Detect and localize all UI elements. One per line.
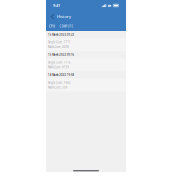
- button[interactable]: Single-Core: 1716: [46, 58, 126, 71]
- staticText: Single-Core: 1711: [48, 41, 71, 44]
- staticText: COMPUTE: [59, 25, 72, 28]
- staticText: Single-Core: 1716: [48, 61, 71, 64]
- staticText: 15 March 2022 09:16: [48, 53, 75, 56]
- staticText: Single-Core: 1682: [48, 81, 71, 84]
- staticText: Multi-Core: 4208: [48, 45, 69, 49]
- staticText: 14 March 2022 19:58: [48, 73, 75, 77]
- button[interactable]: COMPUTE: [57, 22, 74, 31]
- staticText: Multi-Core: 3941: [48, 86, 69, 89]
- staticText: CPU: [49, 25, 55, 28]
- button[interactable]: Back: [48, 11, 57, 21]
- button[interactable]: Single-Core: 1711: [46, 38, 126, 51]
- staticText: Multi-Core: 4139: [48, 65, 69, 69]
- staticText: 9:41: [53, 3, 60, 8]
- button[interactable]: CPU: [46, 22, 57, 31]
- staticText: History: [57, 14, 71, 19]
- button[interactable]: Single-Core: 1682: [46, 79, 126, 92]
- staticText: 15 March 2022 09:23: [48, 33, 75, 36]
